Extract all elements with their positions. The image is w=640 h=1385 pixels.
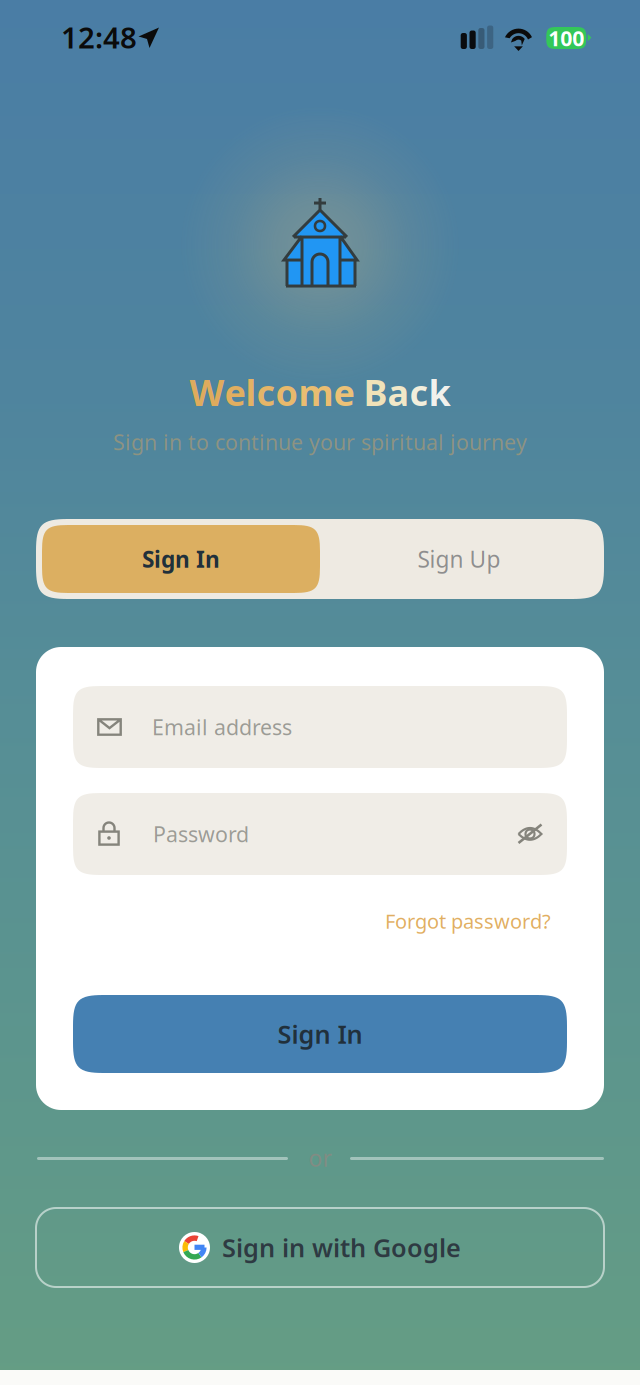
staticText: a [387, 368, 409, 416]
staticText: Sign in to continue your spiritual journ… [113, 428, 527, 456]
button[interactable]: Sign In [42, 525, 320, 593]
staticText: k [428, 368, 450, 416]
button[interactable]: Forgot password? [381, 904, 551, 938]
staticText: Sign in with Google [222, 1231, 461, 1264]
staticText: c [409, 368, 428, 416]
button[interactable]: Sign Up [320, 525, 598, 593]
staticText: o [275, 368, 298, 416]
staticText: Email address [152, 713, 292, 741]
staticText: B [363, 368, 387, 416]
button[interactable]: Show password [509, 813, 551, 855]
staticText: Sign In [142, 544, 220, 574]
staticText: 12:48 [61, 17, 137, 56]
staticText: 100 [548, 24, 584, 52]
staticText: Forgot password? [385, 908, 551, 934]
staticText: or [308, 1143, 331, 1173]
staticText: m [298, 368, 333, 416]
staticText: e [333, 368, 354, 416]
staticText: e [224, 368, 245, 416]
staticText: Sign In [277, 1017, 362, 1051]
staticText: l [245, 368, 256, 416]
button[interactable]: Sign in with Google [36, 1208, 604, 1287]
staticText: W [189, 368, 224, 416]
button[interactable]: Sign In [73, 995, 567, 1073]
staticText: Sign Up [417, 544, 500, 574]
staticText: Password [153, 820, 249, 848]
staticText: c [256, 368, 275, 416]
